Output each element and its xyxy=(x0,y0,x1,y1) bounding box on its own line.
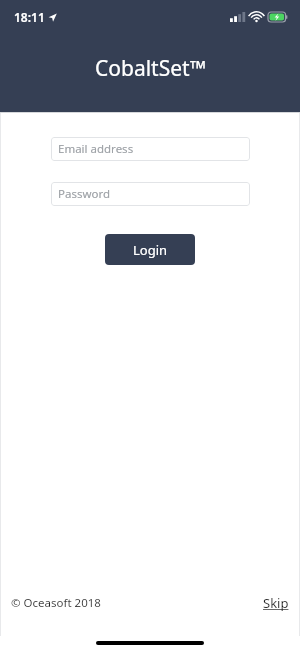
staticText: CobaltSet™ xyxy=(95,54,206,83)
staticText: © Oceasoft 2018 xyxy=(11,595,101,611)
staticText: Skip xyxy=(263,594,289,612)
staticText: 18:11 xyxy=(14,9,45,25)
staticText: Login xyxy=(133,241,168,259)
button[interactable]: Skip xyxy=(263,594,289,612)
button[interactable]: Login xyxy=(105,234,195,265)
staticText: Email address xyxy=(58,141,134,157)
button[interactable]: Password xyxy=(51,182,250,206)
staticText: Password xyxy=(58,186,111,202)
button[interactable]: Email address xyxy=(51,137,250,161)
